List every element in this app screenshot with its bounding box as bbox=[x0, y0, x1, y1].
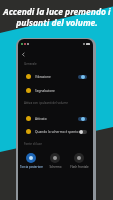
staticText: Attivato bbox=[35, 117, 47, 121]
staticText: Schermo bbox=[49, 165, 62, 169]
staticText: Accendi la luce premendo i pulsanti del … bbox=[3, 6, 111, 28]
staticText: Generale bbox=[24, 62, 37, 66]
button[interactable]: Back bbox=[19, 50, 28, 59]
button[interactable]: Flash frontale bbox=[67, 153, 91, 175]
button[interactable]: Torcia posteriore bbox=[19, 153, 43, 175]
staticText: Flash frontale bbox=[70, 165, 89, 169]
staticText: Fonte di luce bbox=[24, 142, 42, 146]
button[interactable]: Schermo bbox=[43, 153, 67, 175]
staticText: Segnalazione bbox=[35, 89, 55, 93]
button[interactable]: Segnalazione bbox=[18, 84, 93, 97]
button[interactable]: Vibrazione bbox=[18, 70, 93, 83]
button[interactable]: Attivato bbox=[18, 112, 93, 125]
staticText: Torcia posteriore bbox=[20, 165, 43, 169]
button[interactable]: Quando lo schermo è spento bbox=[18, 125, 93, 138]
staticText: Quando lo schermo è spento bbox=[35, 130, 79, 134]
staticText: Attiva con i pulsanti del volume bbox=[24, 101, 68, 105]
staticText: Vibrazione bbox=[35, 75, 51, 79]
